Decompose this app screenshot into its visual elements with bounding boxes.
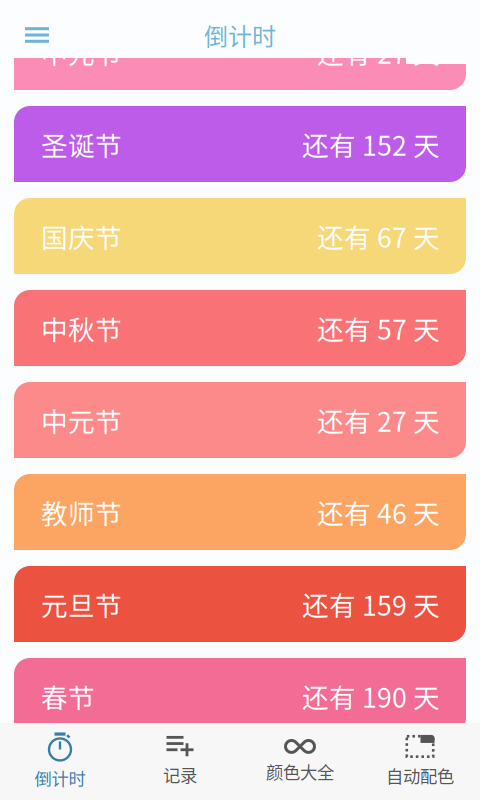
button[interactable]: 教师节: [14, 474, 466, 550]
button[interactable]: 国庆节: [14, 198, 466, 274]
button[interactable]: 记录: [120, 723, 240, 800]
button[interactable]: 中元节: [14, 382, 466, 458]
button[interactable]: 圣诞节: [14, 106, 466, 182]
button[interactable]: Menu: [0, 6, 74, 64]
staticText: 中元节: [41, 33, 122, 71]
staticText: 还有 27 天: [317, 33, 440, 71]
staticText: 还有 67 天: [317, 217, 440, 255]
staticText: 倒计时: [204, 18, 276, 52]
staticText: 还有 159 天: [302, 585, 440, 623]
staticText: 圣诞节: [41, 125, 122, 163]
staticText: 中秋节: [41, 309, 122, 347]
staticText: 还有 57 天: [317, 309, 440, 347]
button[interactable]: 元旦节: [14, 566, 466, 642]
button[interactable]: 倒计时: [0, 723, 120, 800]
staticText: 中元节: [41, 401, 122, 439]
button[interactable]: 颜色大全: [240, 723, 360, 800]
staticText: 颜色大全: [266, 759, 334, 784]
staticText: 元旦节: [41, 585, 122, 623]
staticText: 春节: [41, 677, 95, 715]
staticText: 还有 152 天: [302, 125, 440, 163]
staticText: 还有 46 天: [317, 493, 440, 531]
staticText: 教师节: [41, 493, 122, 531]
staticText: 国庆节: [41, 217, 122, 255]
staticText: 自动配色: [386, 763, 454, 788]
staticText: 还有 27 天: [317, 401, 440, 439]
button[interactable]: 自动配色: [360, 723, 480, 800]
button[interactable]: 中元节: [14, 14, 466, 90]
staticText: 记录: [163, 762, 197, 787]
staticText: 倒计时: [34, 765, 85, 791]
button[interactable]: 中秋节: [14, 290, 466, 366]
button[interactable]: 春节: [14, 658, 466, 734]
staticText: 还有 190 天: [302, 677, 440, 715]
